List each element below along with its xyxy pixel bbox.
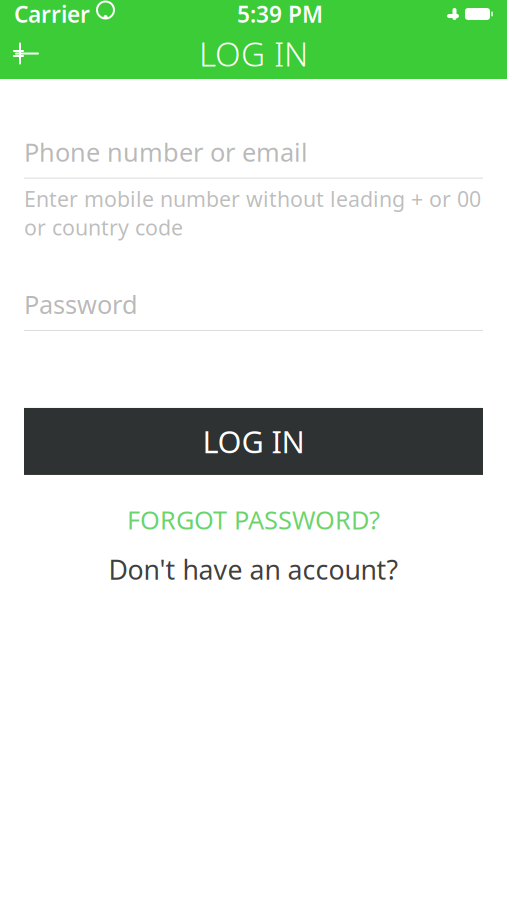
staticText: Phone number or email bbox=[24, 135, 308, 169]
staticText: Password bbox=[24, 287, 138, 321]
button[interactable]: Back bbox=[0, 31, 54, 75]
staticText: LOG IN bbox=[202, 421, 304, 462]
staticText: FORGOT PASSWORD? bbox=[127, 503, 380, 536]
staticText: Enter mobile number without leading + or… bbox=[24, 185, 481, 241]
staticText: LOG IN bbox=[199, 31, 308, 76]
staticText: Carrier bbox=[14, 0, 90, 29]
staticText: 5:39 PM bbox=[237, 0, 323, 29]
button[interactable]: FORGOT PASSWORD? bbox=[24, 503, 483, 536]
button[interactable]: LOG IN bbox=[24, 408, 483, 475]
staticText: Don't have an account? bbox=[108, 552, 398, 587]
button[interactable]: Don't have an account? bbox=[24, 552, 483, 587]
